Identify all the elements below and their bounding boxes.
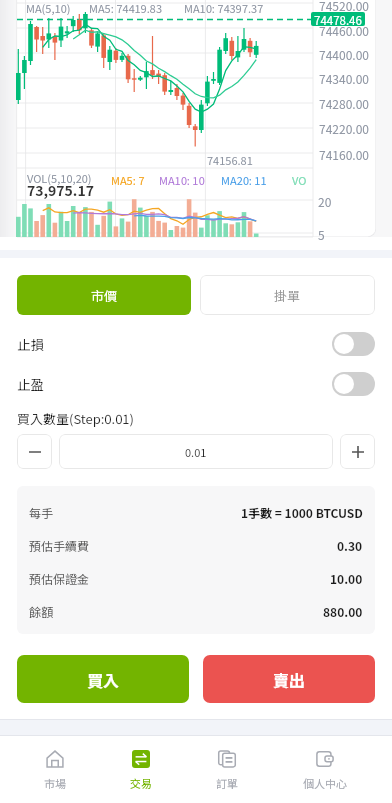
staticText: 74280.00	[319, 95, 369, 112]
staticText: 掛單	[274, 286, 301, 305]
staticText: MA(5,10)	[26, 0, 71, 16]
staticText: 1手數 = 1000 BTCUSD	[241, 504, 363, 521]
staticText: 止盈	[17, 374, 44, 394]
staticText: 市場	[44, 775, 66, 791]
staticText: 止損	[17, 334, 44, 354]
staticText: 74340.00	[319, 70, 369, 87]
staticText: 20	[318, 193, 332, 210]
staticText: 賣出	[273, 668, 306, 691]
button[interactable]: Decrease quantity	[17, 434, 52, 469]
staticText: 個人中心	[303, 775, 347, 791]
staticText: MA5: 74419.83	[89, 0, 163, 16]
button[interactable]: 賣出	[203, 655, 375, 703]
button[interactable]: 買入	[17, 655, 189, 703]
button[interactable]: 市場	[12, 736, 98, 803]
staticText: MA20: 11	[221, 172, 267, 188]
staticText: 預估保證金	[29, 570, 90, 587]
button[interactable]: 個人中心	[282, 736, 368, 803]
staticText: 買入數量(Step:0.01)	[17, 409, 134, 428]
button[interactable]: 市價	[17, 275, 191, 315]
staticText: 5	[318, 226, 325, 243]
staticText: 74220.00	[319, 120, 369, 137]
staticText: VOL(5,10,20)	[27, 170, 92, 186]
staticText: 74460.00	[319, 22, 369, 39]
button[interactable]: 訂單	[184, 736, 270, 803]
staticText: 0.30	[337, 537, 363, 554]
staticText: MA10: 10	[159, 172, 205, 188]
button[interactable]: 掛單	[200, 275, 375, 315]
staticText: MA5: 7	[111, 172, 145, 188]
staticText: 買入	[87, 668, 120, 691]
button[interactable]: 交易	[98, 736, 184, 803]
staticText: 74520.00	[319, 0, 369, 14]
staticText: 73,975.17	[27, 180, 94, 200]
button[interactable]: Increase quantity	[340, 434, 375, 469]
staticText: 預估手續費	[29, 537, 90, 554]
staticText: 每手	[29, 504, 54, 521]
staticText: VO	[292, 172, 307, 188]
staticText: 交易	[130, 775, 152, 791]
staticText: 74156.81	[207, 152, 253, 168]
staticText: 74478.46	[314, 12, 362, 26]
staticText: 74400.00	[319, 46, 369, 63]
staticText: 74160.00	[319, 146, 369, 163]
staticText: 市價	[91, 286, 118, 305]
staticText: 10.00	[330, 570, 363, 587]
staticText: 0.01	[185, 444, 207, 460]
staticText: 餘額	[29, 603, 54, 620]
staticText: 880.00	[323, 603, 363, 620]
button[interactable]: 止盈	[332, 372, 375, 396]
button[interactable]: 止損	[332, 332, 375, 356]
staticText: MA10: 74397.37	[184, 0, 264, 16]
staticText: 訂單	[216, 775, 238, 791]
